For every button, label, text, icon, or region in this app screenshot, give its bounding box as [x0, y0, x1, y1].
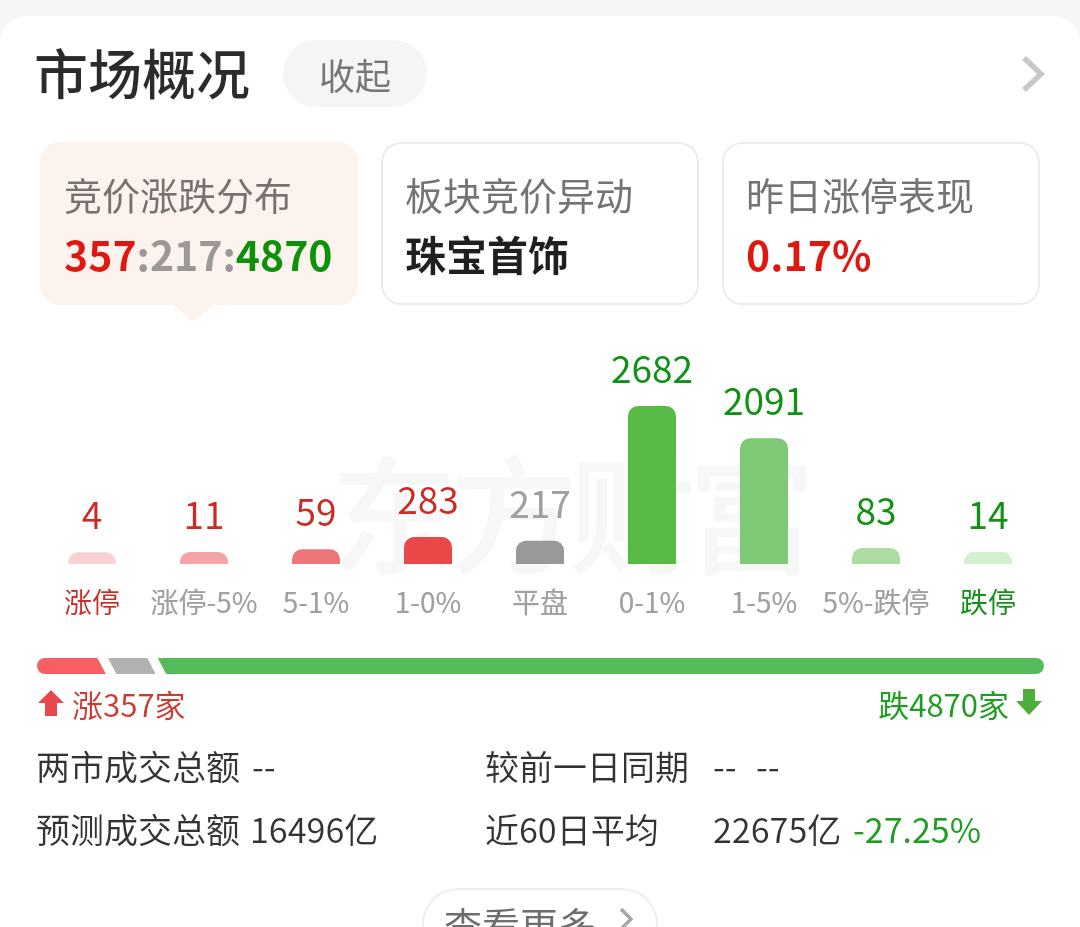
staticText: 预测成交总额	[36, 804, 240, 853]
staticText: 板块竞价异动	[405, 166, 634, 221]
staticText: 东方财富	[331, 417, 808, 601]
staticText: 2091	[684, 372, 844, 426]
staticText: 近60日平均	[485, 804, 659, 853]
staticText: 跌4870家	[856, 681, 1009, 726]
staticText: 两市成交总额	[36, 741, 240, 790]
staticText: -27.25%	[853, 804, 982, 853]
button[interactable]: 板块竞价异动	[381, 142, 699, 305]
staticText: 16496亿	[250, 804, 379, 853]
button[interactable]: 昨日涨停表现	[722, 142, 1040, 305]
staticText: --	[252, 741, 276, 790]
staticText: 查看更多	[444, 896, 597, 927]
staticText: 收起	[319, 48, 392, 100]
button[interactable]: 收起	[283, 40, 427, 107]
staticText: 珠宝首饰	[405, 223, 569, 282]
staticText: 涨停	[12, 581, 172, 622]
other: 下跌	[1016, 689, 1043, 716]
staticText: 1-5%	[684, 581, 844, 622]
staticText: --	[756, 741, 780, 790]
staticText: 昨日涨停表现	[746, 166, 975, 221]
button[interactable]: 查看更多	[422, 888, 658, 927]
staticText: 较前一日同期	[485, 741, 689, 790]
staticText: 竞价涨跌分布	[64, 166, 293, 221]
staticText: 平盘	[460, 581, 620, 622]
staticText: 0-1%	[572, 581, 732, 622]
staticText: 2682	[572, 340, 732, 394]
staticText: 跌停	[908, 581, 1068, 622]
staticText: 涨停-5%	[124, 581, 284, 622]
staticText: 市场概况	[34, 32, 250, 110]
staticText: 22675亿	[713, 804, 842, 853]
staticText: 14	[908, 486, 1068, 540]
staticText: 59	[236, 483, 396, 537]
button[interactable]: 市场概况	[34, 40, 250, 118]
staticText: 283	[348, 471, 508, 525]
staticText: 1-0%	[348, 581, 508, 622]
staticText: 217	[460, 475, 620, 529]
button[interactable]: 展开更多	[1008, 44, 1064, 104]
staticText: 5-1%	[236, 581, 396, 622]
staticText: 0.17%	[746, 223, 872, 282]
staticText: --	[713, 741, 737, 790]
staticText: 4	[12, 486, 172, 540]
staticText: 357:217:4870	[64, 223, 333, 282]
staticText: 11	[124, 486, 284, 540]
staticText: 涨357家	[72, 681, 186, 726]
other: 上涨	[38, 690, 65, 717]
button[interactable]: 竞价涨跌分布	[40, 142, 358, 305]
staticText: 83	[796, 482, 956, 536]
staticText: 5%-跌停	[796, 581, 956, 622]
